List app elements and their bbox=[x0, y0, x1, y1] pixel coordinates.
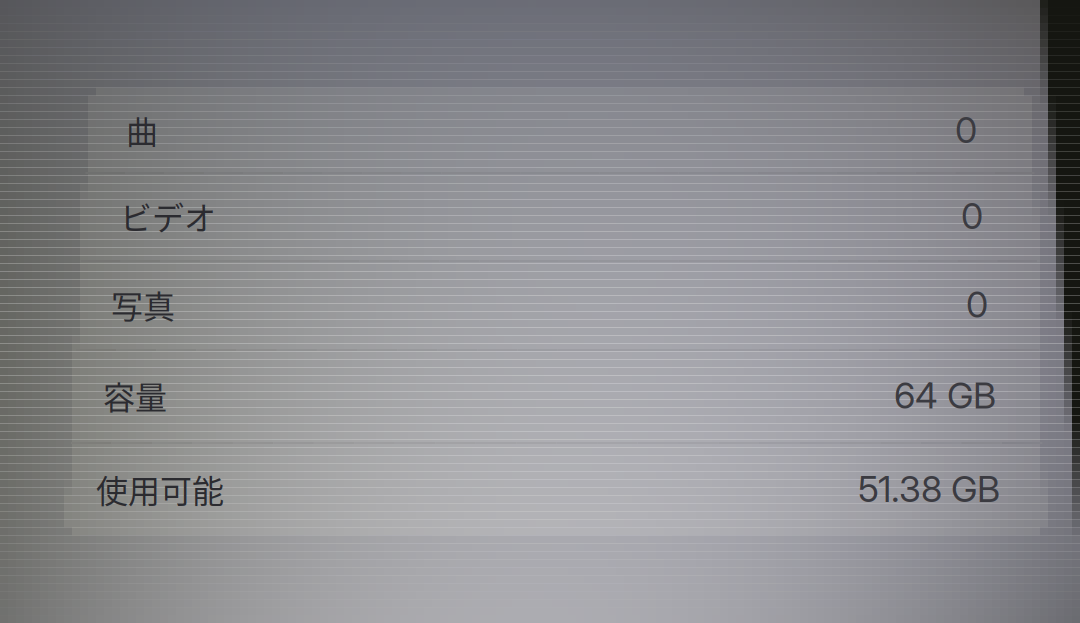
staticText: ビデオ bbox=[120, 193, 216, 239]
staticText: 64 GB bbox=[894, 374, 996, 417]
staticText: 0 bbox=[966, 283, 988, 326]
staticText: 曲 bbox=[126, 107, 158, 153]
staticText: 写真 bbox=[111, 281, 175, 328]
button[interactable]: 使用可能 bbox=[0, 442, 1080, 536]
staticText: 使用可能 bbox=[96, 466, 224, 512]
staticText: 0 bbox=[961, 194, 983, 238]
button[interactable]: 写真 bbox=[0, 260, 1080, 349]
button[interactable]: ビデオ bbox=[0, 172, 1080, 260]
staticText: 0 bbox=[955, 108, 977, 152]
button[interactable]: 容量 bbox=[0, 349, 1080, 442]
staticText: 51.38 GB bbox=[858, 467, 1000, 511]
staticText: 容量 bbox=[103, 372, 167, 419]
button[interactable]: 曲 bbox=[0, 88, 1080, 172]
